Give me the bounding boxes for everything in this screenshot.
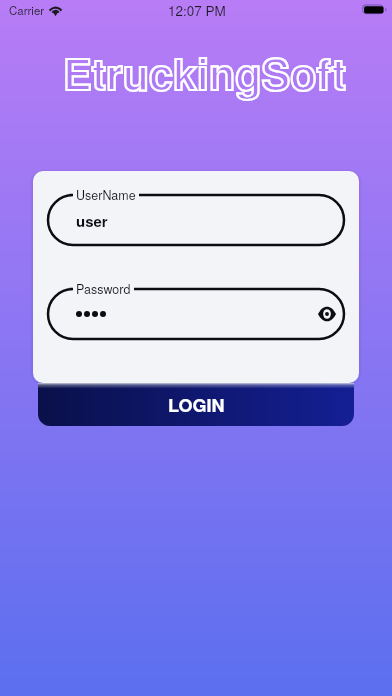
button[interactable]: Show password (312, 299, 342, 329)
staticText: Carrier (9, 2, 45, 18)
staticText: user (76, 210, 108, 231)
button[interactable]: LOGIN (38, 383, 354, 426)
button[interactable]: UserName (48, 195, 344, 245)
button[interactable]: Password (48, 289, 344, 339)
staticText: 12:07 PM (168, 1, 226, 20)
staticText: LOGIN (168, 392, 225, 418)
